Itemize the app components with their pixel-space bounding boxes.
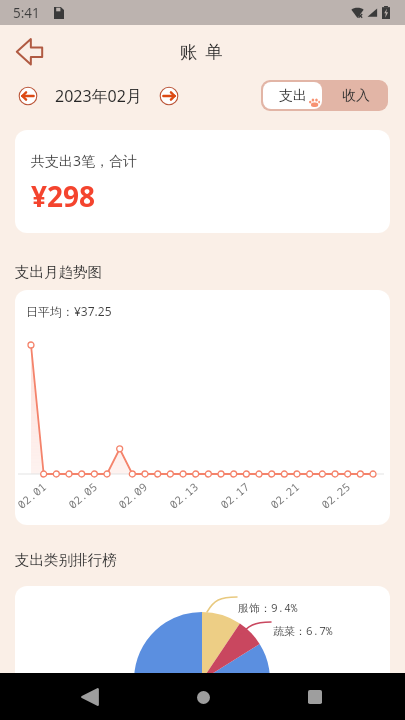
staticText: 支出月趋势图 (15, 263, 102, 281)
staticText: 02.17 (217, 479, 252, 512)
staticText: ¥298 (31, 177, 96, 215)
staticText: 蔬菜：6.7% (273, 623, 333, 638)
button[interactable]: Back (11, 33, 47, 69)
staticText: 02.13 (166, 479, 201, 512)
staticText: 账 单 (180, 39, 225, 63)
staticText: 共支出3笔，合计 (31, 151, 138, 170)
button[interactable]: Home (181, 675, 225, 719)
staticText: 收入 (342, 87, 370, 105)
button[interactable]: 收入 (324, 80, 388, 111)
button[interactable]: Recents (293, 675, 337, 719)
staticText: 02.21 (267, 479, 302, 512)
staticText: 服饰：9.4% (238, 600, 298, 615)
staticText: 5:41 (13, 4, 40, 22)
staticText: 支出 (279, 87, 307, 105)
staticText: 02.01 (15, 479, 49, 512)
button[interactable]: Next month (158, 85, 180, 107)
staticText: 02.05 (65, 479, 100, 512)
staticText: 02.09 (115, 479, 150, 512)
staticText: 02.25 (318, 479, 353, 512)
staticText: 2023年02月 (55, 85, 142, 107)
button[interactable]: Previous month (17, 85, 39, 107)
staticText: 日平均：¥37.25 (26, 303, 112, 319)
staticText: 支出类别排行榜 (15, 551, 117, 569)
button[interactable]: Back (68, 675, 112, 719)
button[interactable]: 支出 (263, 82, 322, 109)
button[interactable]: 共支出3笔，合计 (15, 130, 390, 233)
